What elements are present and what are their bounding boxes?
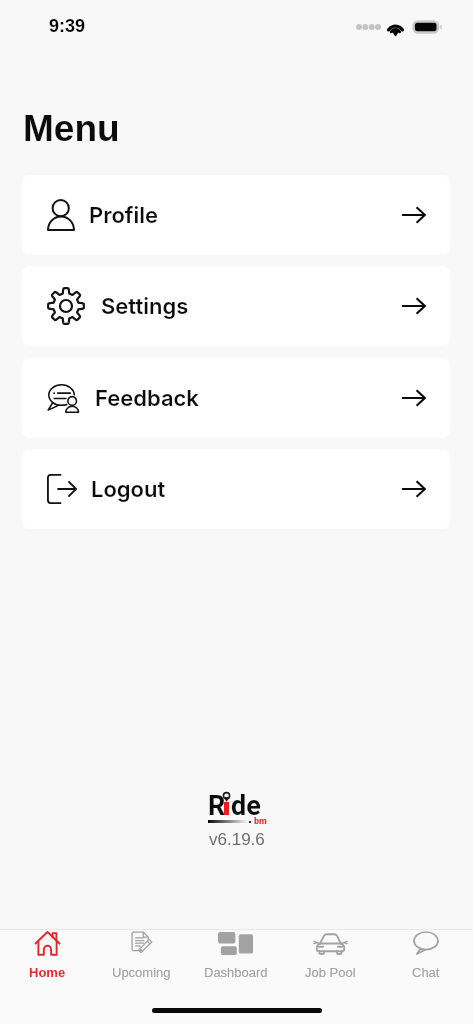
other: Feedback (48, 384, 78, 413)
staticText: Job Pool (305, 965, 356, 980)
other: Settings (47, 287, 85, 325)
button[interactable]: Upcoming (94, 930, 188, 994)
staticText: de (231, 790, 261, 822)
button[interactable]: Logout (22, 449, 450, 529)
staticText: Chat (412, 965, 440, 980)
staticText: R (208, 790, 226, 822)
staticText: Upcoming (112, 965, 171, 980)
button[interactable]: Dashboard (188, 930, 283, 994)
staticText: Settings (101, 293, 189, 320)
staticText: Feedback (95, 385, 199, 412)
other: Logout (47, 474, 77, 504)
button[interactable]: Job Pool (283, 930, 378, 994)
button[interactable]: Home (0, 930, 94, 994)
staticText: Dashboard (204, 965, 268, 980)
staticText: 9:39 (49, 16, 86, 36)
staticText: Logout (91, 476, 166, 503)
staticText: v6.19.6 (209, 830, 265, 849)
button[interactable]: Settings (22, 266, 450, 346)
button[interactable]: Chat (378, 930, 473, 994)
staticText: Home (29, 965, 66, 980)
staticText: bm (254, 816, 267, 827)
button[interactable]: Profile (22, 175, 450, 255)
staticText: Menu (23, 108, 120, 149)
staticText: Profile (89, 202, 159, 229)
button[interactable]: Feedback (22, 358, 450, 438)
other: Profile (47, 199, 75, 231)
